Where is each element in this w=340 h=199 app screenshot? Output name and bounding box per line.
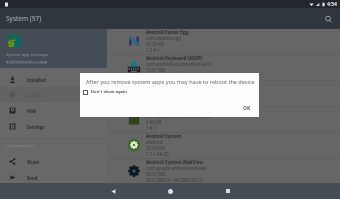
staticText: com.android.inputmethod.latin xyxy=(146,61,211,67)
staticText: 7.1.1 ## 25 xyxy=(146,151,169,157)
staticText: Android System WebView xyxy=(146,159,203,165)
staticText: System (97) xyxy=(6,14,42,23)
staticText: Android Services Library xyxy=(146,81,201,87)
staticText: 1.0 # 1 xyxy=(146,47,160,53)
staticText: Installed xyxy=(27,77,46,83)
staticText: 55.0.2883.91 ## 288306110 xyxy=(146,177,203,183)
staticText: android xyxy=(146,139,163,145)
button[interactable]: Android System xyxy=(0,133,340,159)
button[interactable]: Recents xyxy=(199,183,256,199)
staticText: Wiki xyxy=(27,108,37,114)
button[interactable]: Android Shared Library xyxy=(0,107,340,133)
staticText: System xyxy=(27,92,43,98)
staticText: 37.22 KB xyxy=(146,41,164,47)
staticText: Android System xyxy=(146,133,182,139)
staticText: 4.99 KB xyxy=(146,119,162,125)
button[interactable]: System xyxy=(0,87,107,102)
staticText: Send xyxy=(27,175,38,181)
staticText: OK xyxy=(243,105,251,112)
staticText: System app manager xyxy=(6,51,49,57)
staticText: com.google.android.ext.shared xyxy=(146,113,211,119)
staticText: com.android.egg xyxy=(146,35,182,41)
staticText: com.android.wallpaper.livepicker xyxy=(146,191,214,197)
staticText: Android Keyboard (AOSP) xyxy=(146,55,203,61)
staticText: Settings xyxy=(27,124,45,130)
button[interactable]: OK xyxy=(243,105,251,112)
button[interactable]: Share xyxy=(0,154,107,169)
button[interactable]: Settings xyxy=(0,119,107,134)
staticText: After you remove system apps you may hav… xyxy=(86,78,255,85)
button[interactable]: Android Services Library xyxy=(0,81,340,107)
staticText: 15.81 MB xyxy=(146,67,166,73)
button[interactable]: Android System WebView xyxy=(0,159,340,185)
staticText: 23.05 MB xyxy=(146,145,166,151)
button[interactable]: Installed xyxy=(0,72,107,87)
button[interactable]: Home xyxy=(142,183,199,199)
button[interactable]: Back xyxy=(85,183,142,199)
staticText: Communicate xyxy=(7,143,35,149)
staticText: Android Easter Egg xyxy=(146,29,189,35)
staticText: Android Wallpapers xyxy=(146,185,190,191)
button[interactable]: Android Wallpapers xyxy=(0,185,340,199)
button[interactable]: Wiki xyxy=(0,103,107,118)
button[interactable]: Android Keyboard (AOSP) xyxy=(0,55,340,81)
staticText: 1 # 1 xyxy=(146,125,157,131)
button[interactable]: Don't show again xyxy=(83,89,128,95)
staticText: Share xyxy=(27,159,40,165)
staticText: 66.91 MB xyxy=(146,171,166,177)
staticText: 4:54 xyxy=(327,1,337,8)
staticText: android-tools.ru.app xyxy=(6,58,48,64)
button[interactable]: Search xyxy=(321,12,335,26)
button[interactable]: Send xyxy=(0,170,107,185)
staticText: Don't show again xyxy=(91,89,128,95)
button[interactable]: Android Easter Egg xyxy=(0,29,340,55)
staticText: com.google.android.webview xyxy=(146,165,207,171)
